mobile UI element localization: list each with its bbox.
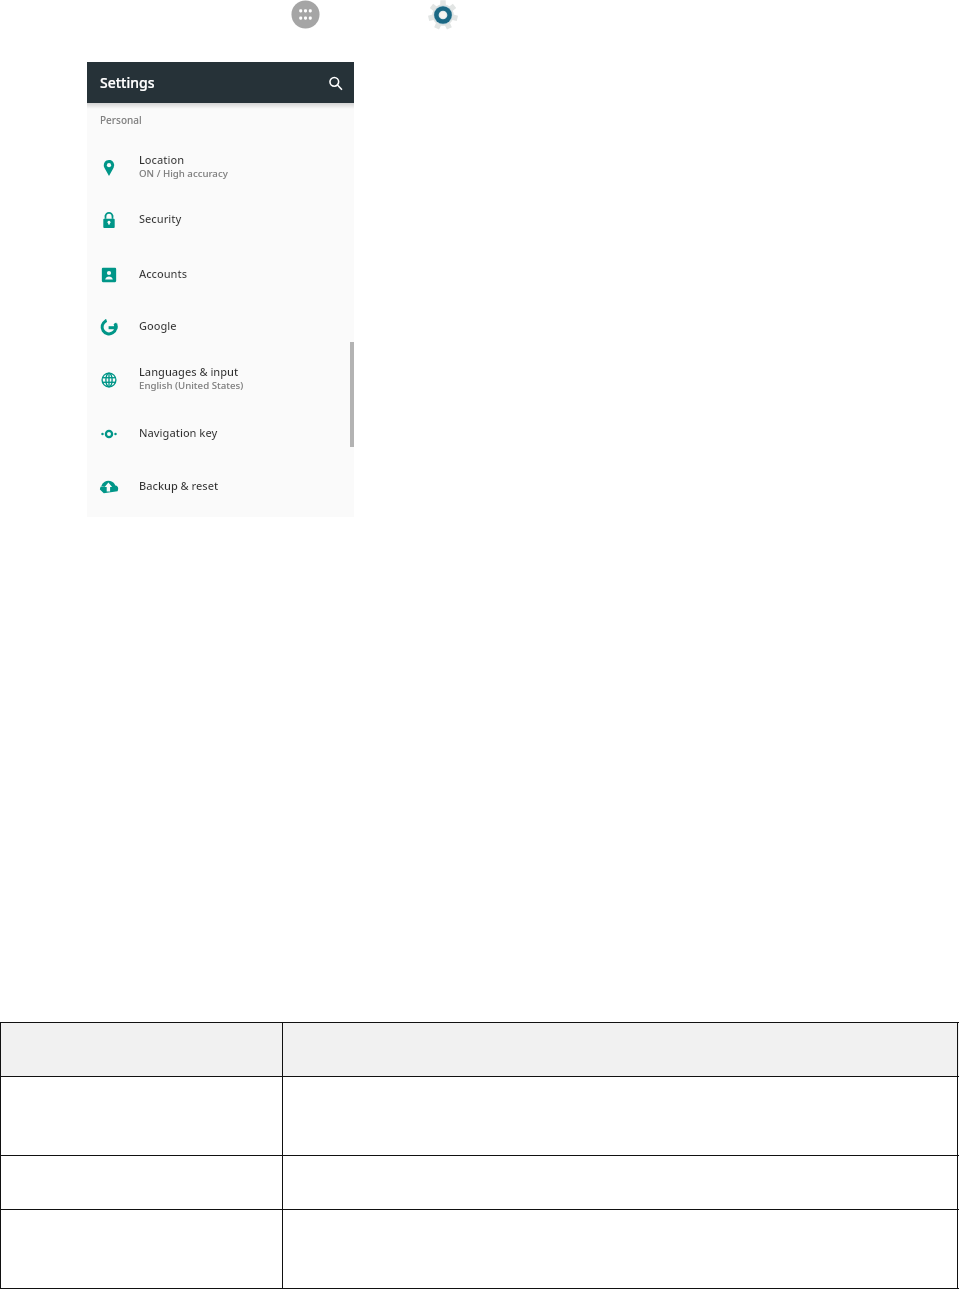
staticText: Location: [139, 152, 185, 167]
button[interactable]: Navigation key: [87, 412, 354, 452]
button[interactable]: Search: [322, 70, 348, 96]
staticText: Security: [139, 211, 182, 226]
staticText: ON / High accuracy: [139, 167, 228, 180]
button[interactable]: Security: [87, 198, 354, 238]
staticText: Backup & reset: [139, 478, 219, 493]
staticText: English (United States): [139, 379, 244, 392]
button[interactable]: All apps: [291, 0, 320, 29]
staticText: Languages & input: [139, 364, 239, 379]
button[interactable]: Settings: [428, 0, 458, 30]
staticText: Accounts: [139, 266, 188, 281]
button[interactable]: Settings: [87, 62, 354, 103]
staticText: Google: [139, 318, 177, 333]
staticText: Navigation key: [139, 425, 218, 440]
button[interactable]: Accounts: [87, 253, 354, 293]
staticText: Personal: [100, 113, 142, 127]
button[interactable]: Location: [87, 146, 354, 186]
button[interactable]: Languages & input: [87, 358, 354, 398]
staticText: Settings: [100, 73, 155, 92]
button[interactable]: Google: [87, 305, 354, 345]
button[interactable]: Backup & reset: [87, 465, 354, 505]
